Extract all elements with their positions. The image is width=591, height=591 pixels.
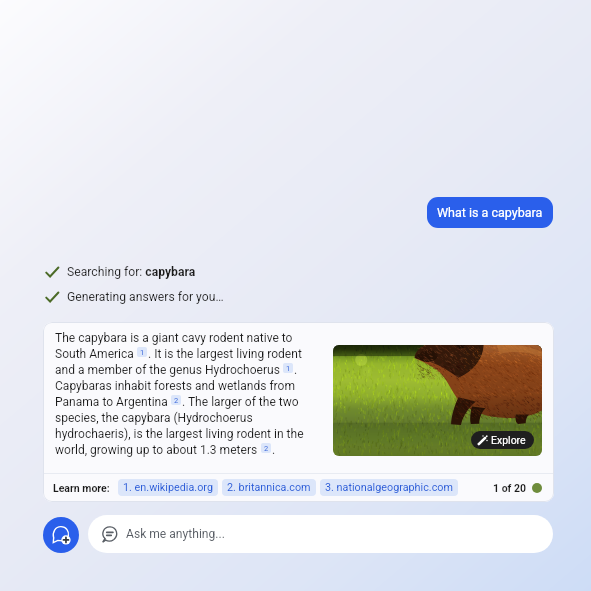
button[interactable]: 1. en.wikipedia.org [118,479,218,496]
button[interactable]: New chat [43,517,79,553]
staticText: The capybara is a giant cavy rodent nati… [55,331,293,345]
button[interactable]: 2 [261,443,271,453]
button[interactable]: 1 [137,347,147,357]
staticText: 1 of 20 [493,482,526,494]
button[interactable]: Ask me anything... [88,515,553,553]
staticText: Ask me anything... [126,527,225,541]
staticText: world, growing up to about 1.3 meters [55,443,258,457]
staticText: Generating answers for you… [67,290,224,304]
staticText: 2 [264,444,269,453]
staticText: Capybaras inhabit forests and wetlands f… [55,379,295,393]
staticText: species, the capybara (Hydrochoerus [55,411,253,425]
staticText: 2. britannica.com [227,481,311,494]
staticText: . [294,363,298,377]
staticText: . It is the largest living rodent [148,347,302,361]
staticText: 3. nationalgeographic.com [325,481,453,494]
staticText: Explore [491,434,526,446]
staticText: What is a capybara [437,205,543,220]
staticText: and a member of the genus Hydrochoerus [55,363,280,377]
staticText: Learn more: [53,482,110,494]
staticText: Searching for: capybara [67,265,196,279]
staticText: 2 [174,396,179,405]
button[interactable]: 3. nationalgeographic.com [320,479,458,496]
button[interactable]: Explore [471,431,534,449]
staticText: 1. en.wikipedia.org [123,481,213,494]
staticText: . [272,443,276,457]
staticText: . The larger of the two [182,395,299,409]
button[interactable]: What is a capybara [427,197,553,228]
button[interactable]: 1 [283,363,293,373]
staticText: South America [55,347,134,361]
button[interactable]: 2 [171,395,181,405]
button[interactable]: 2. britannica.com [222,479,316,496]
staticText: Panama to Argentina [55,395,168,409]
staticText: 1 [140,348,145,357]
staticText: hydrochaeris), is the largest living rod… [55,427,304,441]
staticText: 1 [286,364,291,373]
